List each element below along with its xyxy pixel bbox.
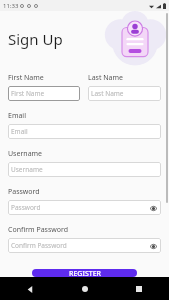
- button[interactable]: Confirm Password: [8, 238, 161, 253]
- staticText: First Name: [8, 73, 44, 83]
- staticText: Email: [8, 111, 26, 121]
- button[interactable]: Toggle password visibility: [148, 241, 158, 251]
- staticText: Username: [11, 165, 43, 174]
- button[interactable]: Password: [8, 200, 161, 215]
- button[interactable]: Toggle password visibility: [148, 203, 158, 213]
- button[interactable]: Recent apps: [131, 281, 147, 297]
- staticText: Password: [8, 187, 40, 197]
- button[interactable]: First Name: [8, 86, 80, 101]
- staticText: 11:33: [3, 2, 19, 10]
- staticText: Confirm Password: [8, 225, 69, 235]
- staticText: Email: [11, 127, 28, 136]
- staticText: Last Name: [91, 89, 124, 98]
- button[interactable]: Home: [77, 281, 93, 297]
- staticText: Sign Up: [8, 29, 63, 49]
- staticText: First Name: [11, 89, 45, 98]
- staticText: REGISTER: [69, 269, 101, 277]
- button[interactable]: REGISTER: [32, 269, 137, 277]
- button[interactable]: Email: [8, 124, 161, 139]
- staticText: Confirm Password: [11, 241, 67, 250]
- button[interactable]: Last Name: [88, 86, 161, 101]
- staticText: Password: [11, 203, 41, 212]
- button[interactable]: Back: [22, 281, 38, 297]
- staticText: Username: [8, 149, 43, 159]
- button[interactable]: Username: [8, 162, 161, 177]
- staticText: Last Name: [88, 73, 124, 83]
